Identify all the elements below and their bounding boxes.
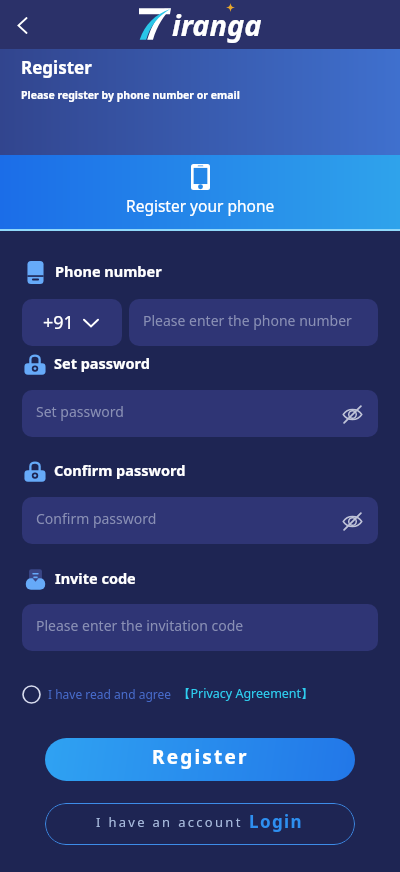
button[interactable]: Back: [4, 7, 40, 43]
staticText: iranga: [172, 5, 262, 44]
button[interactable]: Set password: [22, 390, 378, 437]
staticText: Register your phone: [126, 195, 275, 216]
button[interactable]: Toggle password visibility: [338, 507, 366, 535]
staticText: Please register by phone number or email: [21, 88, 240, 102]
staticText: +91: [43, 310, 74, 335]
staticText: 【Privacy Agreement】: [178, 685, 314, 702]
staticText: Confirm password: [36, 509, 157, 528]
button[interactable]: Please enter the invitation code: [22, 604, 378, 651]
button[interactable]: Please enter the phone number: [129, 299, 378, 346]
button[interactable]: Toggle password visibility: [338, 400, 366, 428]
button[interactable]: I have an account: [45, 803, 355, 845]
button[interactable]: Confirm password: [22, 497, 378, 544]
staticText: Please enter the invitation code: [36, 616, 244, 635]
button[interactable]: Register your phone: [0, 155, 400, 231]
button[interactable]: +91: [22, 299, 122, 346]
staticText: Login: [249, 810, 304, 833]
staticText: Please enter the phone number: [143, 311, 352, 330]
staticText: Set password: [36, 402, 124, 421]
button[interactable]: I have read and agree: [22, 685, 314, 704]
staticText: Register: [21, 56, 92, 79]
staticText: Confirm password: [54, 460, 186, 480]
staticText: I have an account: [96, 813, 243, 831]
staticText: I have read and agree: [48, 686, 172, 702]
staticText: Register: [152, 744, 249, 770]
button[interactable]: Register: [45, 738, 355, 781]
staticText: Invite code: [55, 568, 136, 588]
staticText: Phone number: [55, 261, 162, 281]
staticText: Set password: [54, 353, 150, 373]
